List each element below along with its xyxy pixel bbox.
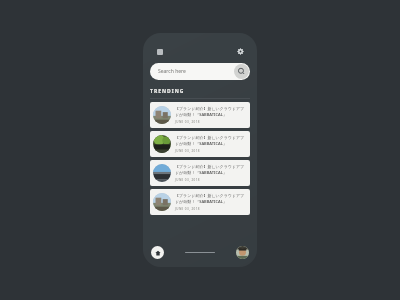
button[interactable]: Home: [151, 246, 164, 259]
button[interactable]: Profile: [236, 246, 249, 259]
button[interactable]: Settings: [235, 46, 246, 57]
staticText: JUNE 03, 2018: [175, 120, 200, 124]
staticText: JUNE 03, 2018: [175, 178, 200, 182]
button[interactable]: Menu: [154, 46, 165, 57]
staticText: TRENDING: [150, 88, 185, 95]
staticText: ドが始動！『SABBATICAL』: [175, 199, 227, 204]
button[interactable]: 【ブランド紹介】新しいクラウドアプラン: [150, 189, 250, 215]
staticText: 【ブランド紹介】新しいクラウドアプラン: [175, 135, 247, 140]
staticText: 【ブランド紹介】新しいクラウドアプラン: [175, 193, 247, 198]
button[interactable]: 【ブランド紹介】新しいクラウドアプラン: [150, 102, 250, 128]
button[interactable]: Search: [234, 64, 249, 79]
staticText: 【ブランド紹介】新しいクラウドアプラン: [175, 106, 247, 111]
button[interactable]: 【ブランド紹介】新しいクラウドアプラン: [150, 160, 250, 186]
button[interactable]: Search here: [150, 63, 250, 80]
staticText: Search here: [158, 68, 186, 75]
staticText: JUNE 03, 2018: [175, 207, 200, 211]
staticText: ドが始動！『SABBATICAL』: [175, 141, 227, 146]
staticText: JUNE 03, 2018: [175, 149, 200, 153]
staticText: ドが始動！『SABBATICAL』: [175, 170, 227, 175]
staticText: 【ブランド紹介】新しいクラウドアプラン: [175, 164, 247, 169]
staticText: ドが始動！『SABBATICAL』: [175, 112, 227, 117]
button[interactable]: 【ブランド紹介】新しいクラウドアプラン: [150, 131, 250, 157]
